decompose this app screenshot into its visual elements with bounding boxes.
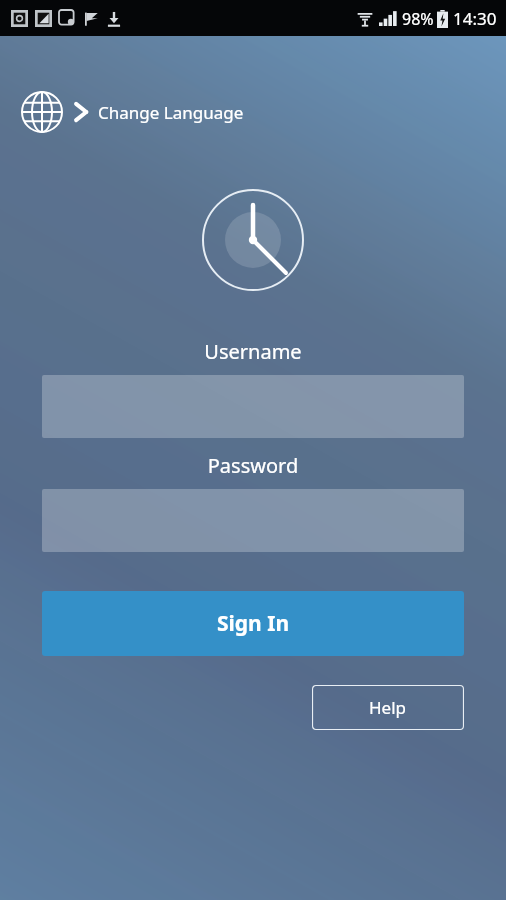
staticText: Change Language xyxy=(98,101,244,124)
button[interactable]: Help xyxy=(312,685,464,730)
staticText: Help xyxy=(369,696,407,719)
staticText: 14:30 xyxy=(453,7,497,30)
staticText: Username xyxy=(0,338,506,365)
staticText: 98% xyxy=(402,8,434,30)
staticText: Sign In xyxy=(217,609,290,638)
button[interactable]: Change language xyxy=(16,84,248,140)
staticText: Password xyxy=(0,452,506,479)
button[interactable]: Sign In xyxy=(42,591,464,656)
other: Change language xyxy=(20,90,64,134)
